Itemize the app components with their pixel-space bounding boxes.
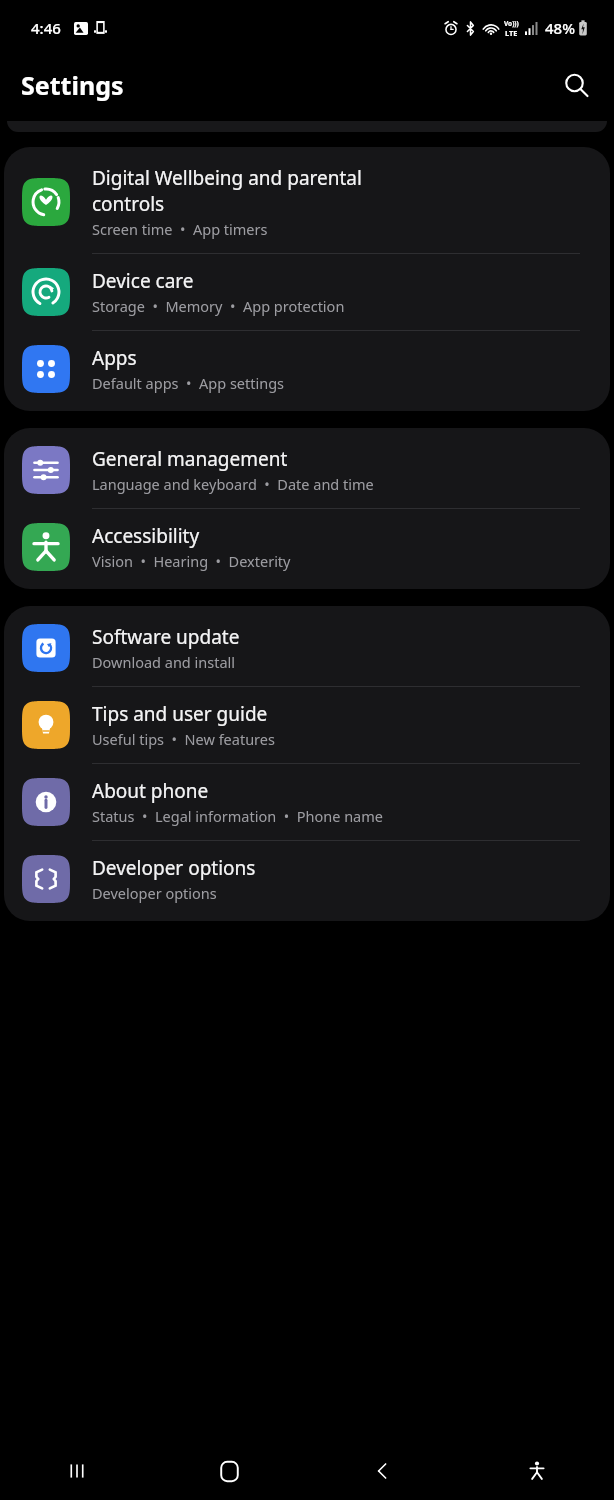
button[interactable]: Apps	[4, 331, 610, 407]
button[interactable]: Device care	[4, 254, 610, 330]
staticText: General management	[92, 446, 288, 472]
staticText: Vo)))	[504, 19, 519, 28]
staticText: Vision • Hearing • Dexterity	[92, 551, 291, 571]
button[interactable]: Tips and user guide	[4, 687, 610, 763]
button[interactable]: Recents	[0, 1442, 153, 1500]
staticText: Developer options	[92, 855, 256, 881]
staticText: About phone	[92, 778, 209, 804]
staticText: 48%	[545, 18, 575, 38]
staticText: Useful tips • New features	[92, 729, 275, 749]
staticText: Settings	[21, 68, 124, 102]
staticText: Storage • Memory • App protection	[92, 296, 345, 316]
staticText: Download and install	[92, 652, 236, 672]
staticText: Tips and user guide	[92, 701, 268, 727]
staticText: Developer options	[92, 883, 217, 903]
button[interactable]: Back	[306, 1442, 460, 1500]
button[interactable]: Search	[554, 63, 598, 107]
staticText: Status • Legal information • Phone name	[92, 806, 383, 826]
button[interactable]: Accessibility	[460, 1442, 614, 1500]
staticText: 4:46	[31, 18, 61, 38]
staticText: Default apps • App settings	[92, 373, 285, 393]
staticText: Screen time • App timers	[92, 219, 268, 239]
staticText: Language and keyboard • Date and time	[92, 474, 374, 494]
button[interactable]: About phone	[4, 764, 610, 840]
button[interactable]: General management	[4, 432, 610, 508]
staticText: Software update	[92, 624, 240, 650]
button[interactable]: Home	[153, 1442, 306, 1500]
staticText: Digital Wellbeing and parental controls	[92, 165, 362, 217]
button[interactable]: Accessibility	[4, 509, 610, 585]
button[interactable]: Software update	[4, 610, 610, 686]
button[interactable]: Developer options	[4, 841, 610, 917]
button[interactable]: Digital Wellbeing and parental controls	[4, 151, 610, 253]
staticText: Device care	[92, 268, 194, 294]
staticText: LTE	[505, 28, 518, 38]
staticText: Accessibility	[92, 523, 200, 549]
staticText: Apps	[92, 345, 137, 371]
